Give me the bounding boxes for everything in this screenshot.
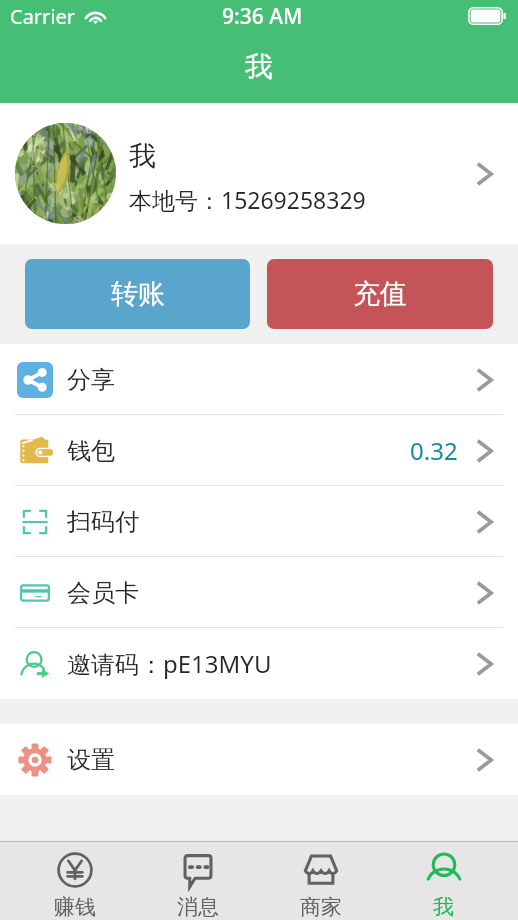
staticText: 本地号：15269258329 — [129, 184, 366, 215]
staticText: 会员卡 — [67, 578, 139, 608]
button[interactable]: 钱包 — [0, 415, 518, 486]
staticText: 转账 — [111, 277, 165, 311]
button[interactable]: 消息 — [136, 842, 259, 920]
button[interactable]: 充值 — [267, 259, 493, 329]
button[interactable]: 分享 — [0, 344, 518, 415]
staticText: Carrier — [10, 3, 76, 30]
staticText: 扫码付 — [67, 507, 139, 537]
button[interactable]: 扫码付 — [0, 486, 518, 557]
button[interactable]: 商家 — [259, 842, 382, 920]
staticText: 赚钱 — [54, 894, 96, 920]
staticText: 充值 — [353, 277, 407, 311]
button[interactable]: 设置 — [0, 724, 518, 795]
staticText: 我 — [245, 49, 273, 84]
staticText: 我 — [433, 894, 454, 920]
staticText: 我 — [129, 139, 156, 173]
button[interactable]: 邀请码：pE13MYU — [0, 628, 518, 699]
staticText: 钱包 — [67, 436, 115, 466]
staticText: 分享 — [67, 365, 115, 395]
staticText: 9:36 AM — [222, 2, 303, 31]
button[interactable]: 我 — [0, 103, 518, 244]
button[interactable]: 我 — [382, 842, 505, 920]
staticText: 0.32 — [410, 434, 458, 467]
staticText: 设置 — [67, 745, 115, 775]
staticText: 邀请码：pE13MYU — [67, 647, 272, 680]
staticText: 商家 — [300, 894, 342, 920]
staticText: 消息 — [177, 894, 219, 920]
button[interactable]: 赚钱 — [13, 842, 136, 920]
button[interactable]: 转账 — [25, 259, 250, 329]
button[interactable]: 会员卡 — [0, 557, 518, 628]
